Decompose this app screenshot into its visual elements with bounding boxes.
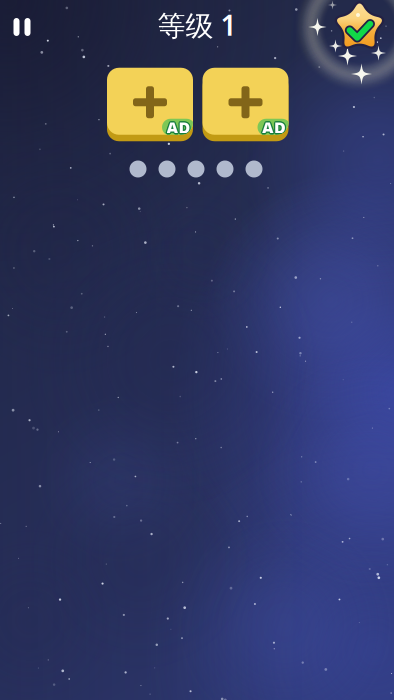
staticText: AD <box>263 117 287 139</box>
staticText: AD <box>261 116 285 137</box>
staticText: AD <box>166 116 190 137</box>
staticText: AD <box>262 118 286 139</box>
staticText: AD <box>261 117 285 138</box>
staticText: AD <box>166 117 190 138</box>
staticText: AD <box>262 117 286 138</box>
staticText: AD <box>168 117 192 138</box>
staticText: AD <box>263 117 287 138</box>
staticText: AD <box>261 117 285 139</box>
button[interactable]: Watch ad for an extra tile <box>107 68 193 141</box>
staticText: AD <box>167 117 191 139</box>
button[interactable]: Level complete award <box>303 0 394 83</box>
staticText: AD <box>166 117 190 139</box>
staticText: AD <box>167 116 191 137</box>
staticText: 等级 1 <box>157 6 236 44</box>
button[interactable]: Watch ad for an extra tile <box>202 68 288 141</box>
button[interactable]: Pause <box>0 5 44 49</box>
staticText: AD <box>166 118 190 139</box>
staticText: AD <box>166 115 190 137</box>
staticText: AD <box>165 117 189 138</box>
staticText: AD <box>262 115 286 137</box>
staticText: AD <box>263 116 287 137</box>
